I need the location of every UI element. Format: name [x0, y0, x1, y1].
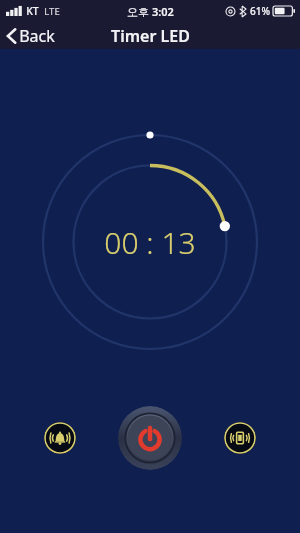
- button[interactable]: Power: [118, 406, 182, 470]
- staticText: Timer LED: [111, 25, 190, 47]
- staticText: LTE: [44, 5, 60, 18]
- staticText: 오후 3:02: [127, 4, 174, 19]
- staticText: 61%: [250, 4, 270, 18]
- button[interactable]: Vibrate alert: [224, 422, 256, 454]
- staticText: Back: [19, 25, 55, 46]
- staticText: KT: [26, 4, 39, 18]
- staticText: 00 : 13: [104, 222, 196, 263]
- button[interactable]: Sound alert: [44, 422, 76, 454]
- button[interactable]: Back: [0, 22, 65, 49]
